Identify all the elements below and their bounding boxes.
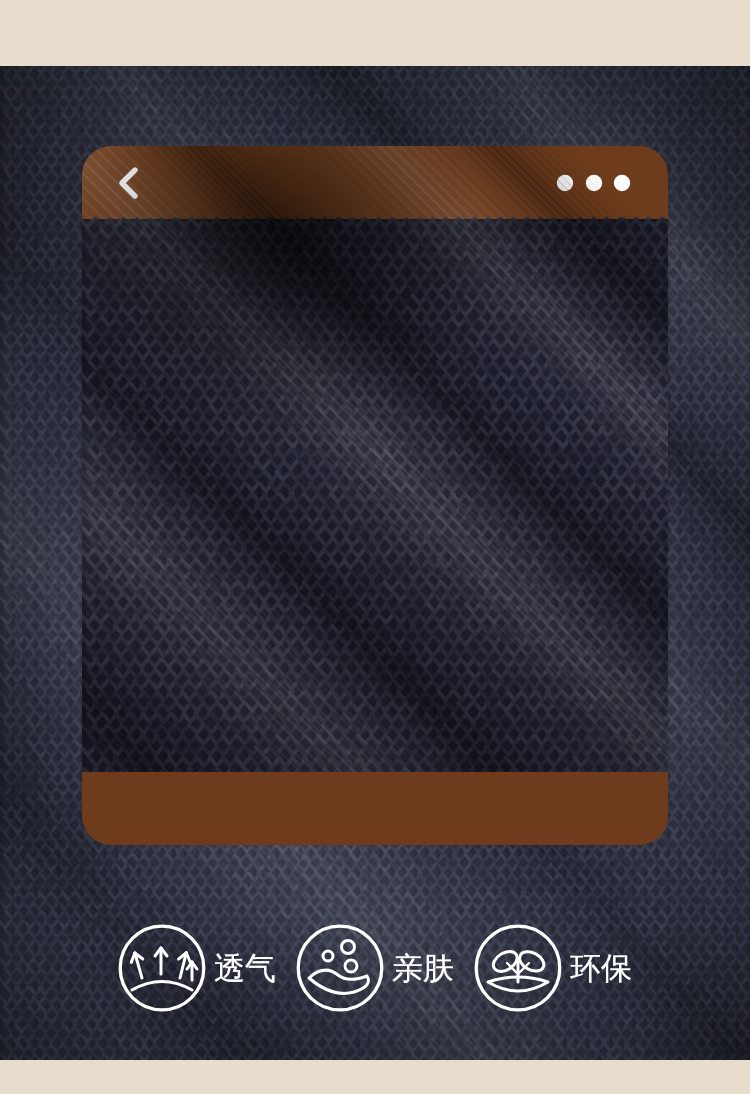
staticText: 环保 [570,949,632,988]
button[interactable]: 环保 [474,924,632,1012]
button[interactable]: More options [528,158,648,208]
button[interactable] [82,772,668,845]
staticText: 亲肤 [392,949,454,988]
button[interactable]: 亲肤 [296,924,454,1012]
button[interactable]: Back [103,158,153,208]
staticText: 透气 [214,949,276,988]
button[interactable]: 透气 [118,924,276,1012]
